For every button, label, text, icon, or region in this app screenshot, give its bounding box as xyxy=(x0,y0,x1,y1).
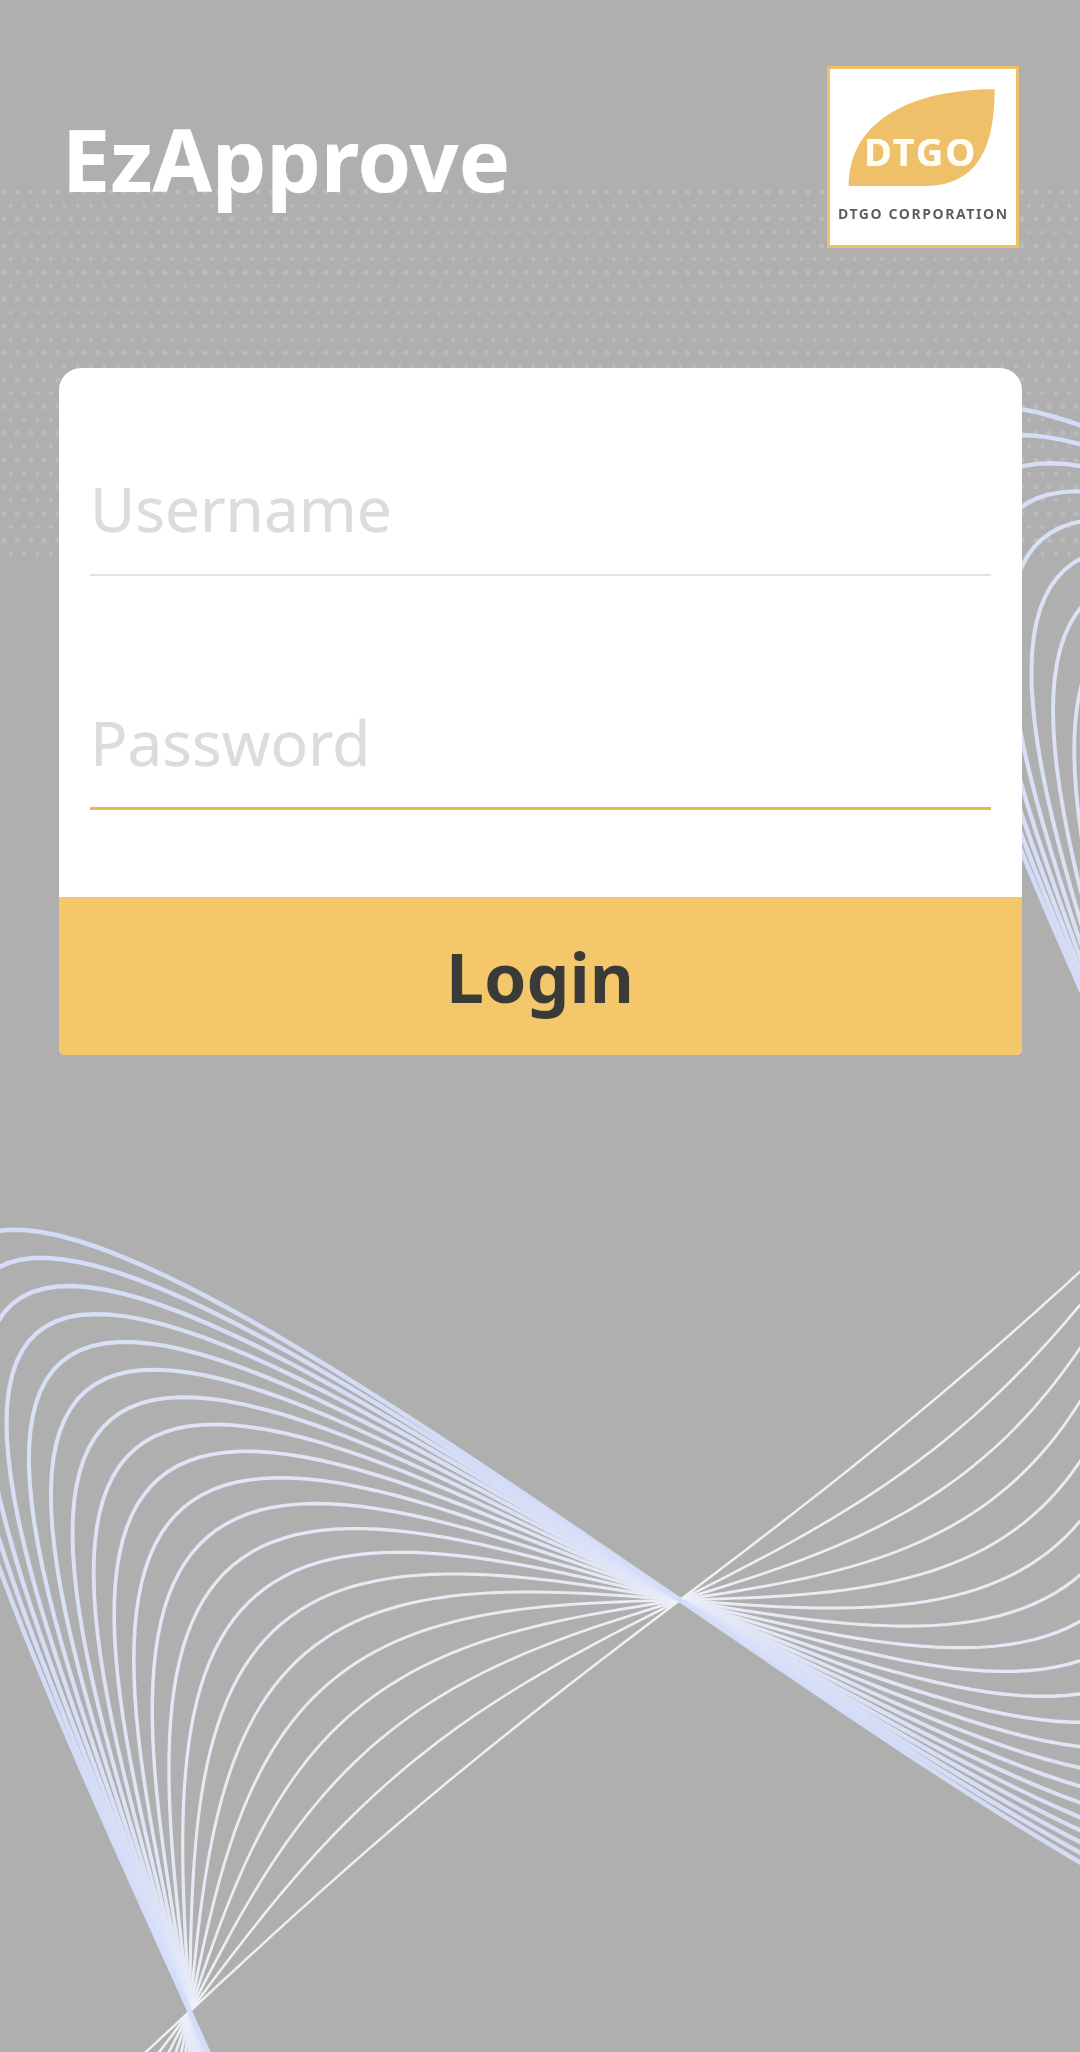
button[interactable]: Login xyxy=(59,897,1022,1055)
staticText: EzApprove xyxy=(62,100,510,217)
staticText: Login xyxy=(446,930,635,1023)
staticText: DTGO CORPORATION xyxy=(838,204,1009,223)
staticText: Password xyxy=(90,700,371,784)
staticText: Username xyxy=(90,466,392,550)
staticText: DTGO xyxy=(864,125,978,177)
button[interactable]: Password xyxy=(90,698,991,810)
button[interactable]: Username xyxy=(90,464,991,576)
other: DTGO Corporation logo xyxy=(830,69,1016,245)
